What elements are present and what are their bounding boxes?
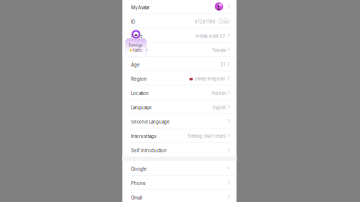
staticText: 61281196: [195, 19, 216, 24]
staticText: Gmail: [131, 195, 142, 200]
button[interactable]: Copy: [218, 19, 230, 24]
staticText: English: [213, 105, 226, 110]
button[interactable]: Google: [122, 161, 236, 175]
staticText: Region: [131, 76, 147, 82]
staticText: Hidden: [212, 91, 226, 96]
staticText: Language: [131, 105, 152, 110]
button[interactable]: Gmail: [122, 190, 236, 202]
button[interactable]: Region: [122, 71, 236, 85]
staticText: Interest tags: [131, 134, 156, 139]
button[interactable]: ID: [122, 14, 236, 28]
staticText: Age: [131, 62, 140, 67]
button[interactable]: Gender: [122, 42, 236, 57]
staticText: 100%: [132, 48, 142, 53]
button[interactable]: Age: [122, 57, 236, 71]
staticText: Second Language: [131, 119, 170, 125]
staticText: Name: [131, 34, 143, 39]
staticText: Phone: [131, 181, 146, 186]
staticText: Female: [213, 48, 226, 53]
staticText: mehak malik 32: [196, 34, 226, 39]
staticText: Location: [131, 91, 149, 96]
button[interactable]: Phone: [122, 175, 236, 190]
staticText: ID: [131, 19, 135, 24]
button[interactable]: My Avatar: [215, 2, 223, 11]
staticText: Google: [131, 167, 147, 172]
button[interactable]: My Avatar: [122, 0, 236, 14]
button[interactable]: Self introduction: [122, 142, 236, 157]
staticText: United Kingdom: [195, 77, 226, 82]
staticText: Copy: [219, 19, 228, 23]
button[interactable]: Interest tags: [122, 128, 236, 142]
staticText: Seeking chat friends: [188, 134, 226, 139]
staticText: Earnings: [129, 43, 143, 47]
button[interactable]: Second Language: [122, 114, 236, 128]
staticText: Gender: [131, 48, 148, 53]
button[interactable]: Language: [122, 99, 236, 114]
button[interactable]: Location: [122, 85, 236, 99]
button[interactable]: Name: [122, 28, 236, 42]
staticText: 21: [221, 62, 226, 67]
staticText: Self introduction: [131, 148, 167, 153]
staticText: My Avatar: [131, 5, 150, 10]
